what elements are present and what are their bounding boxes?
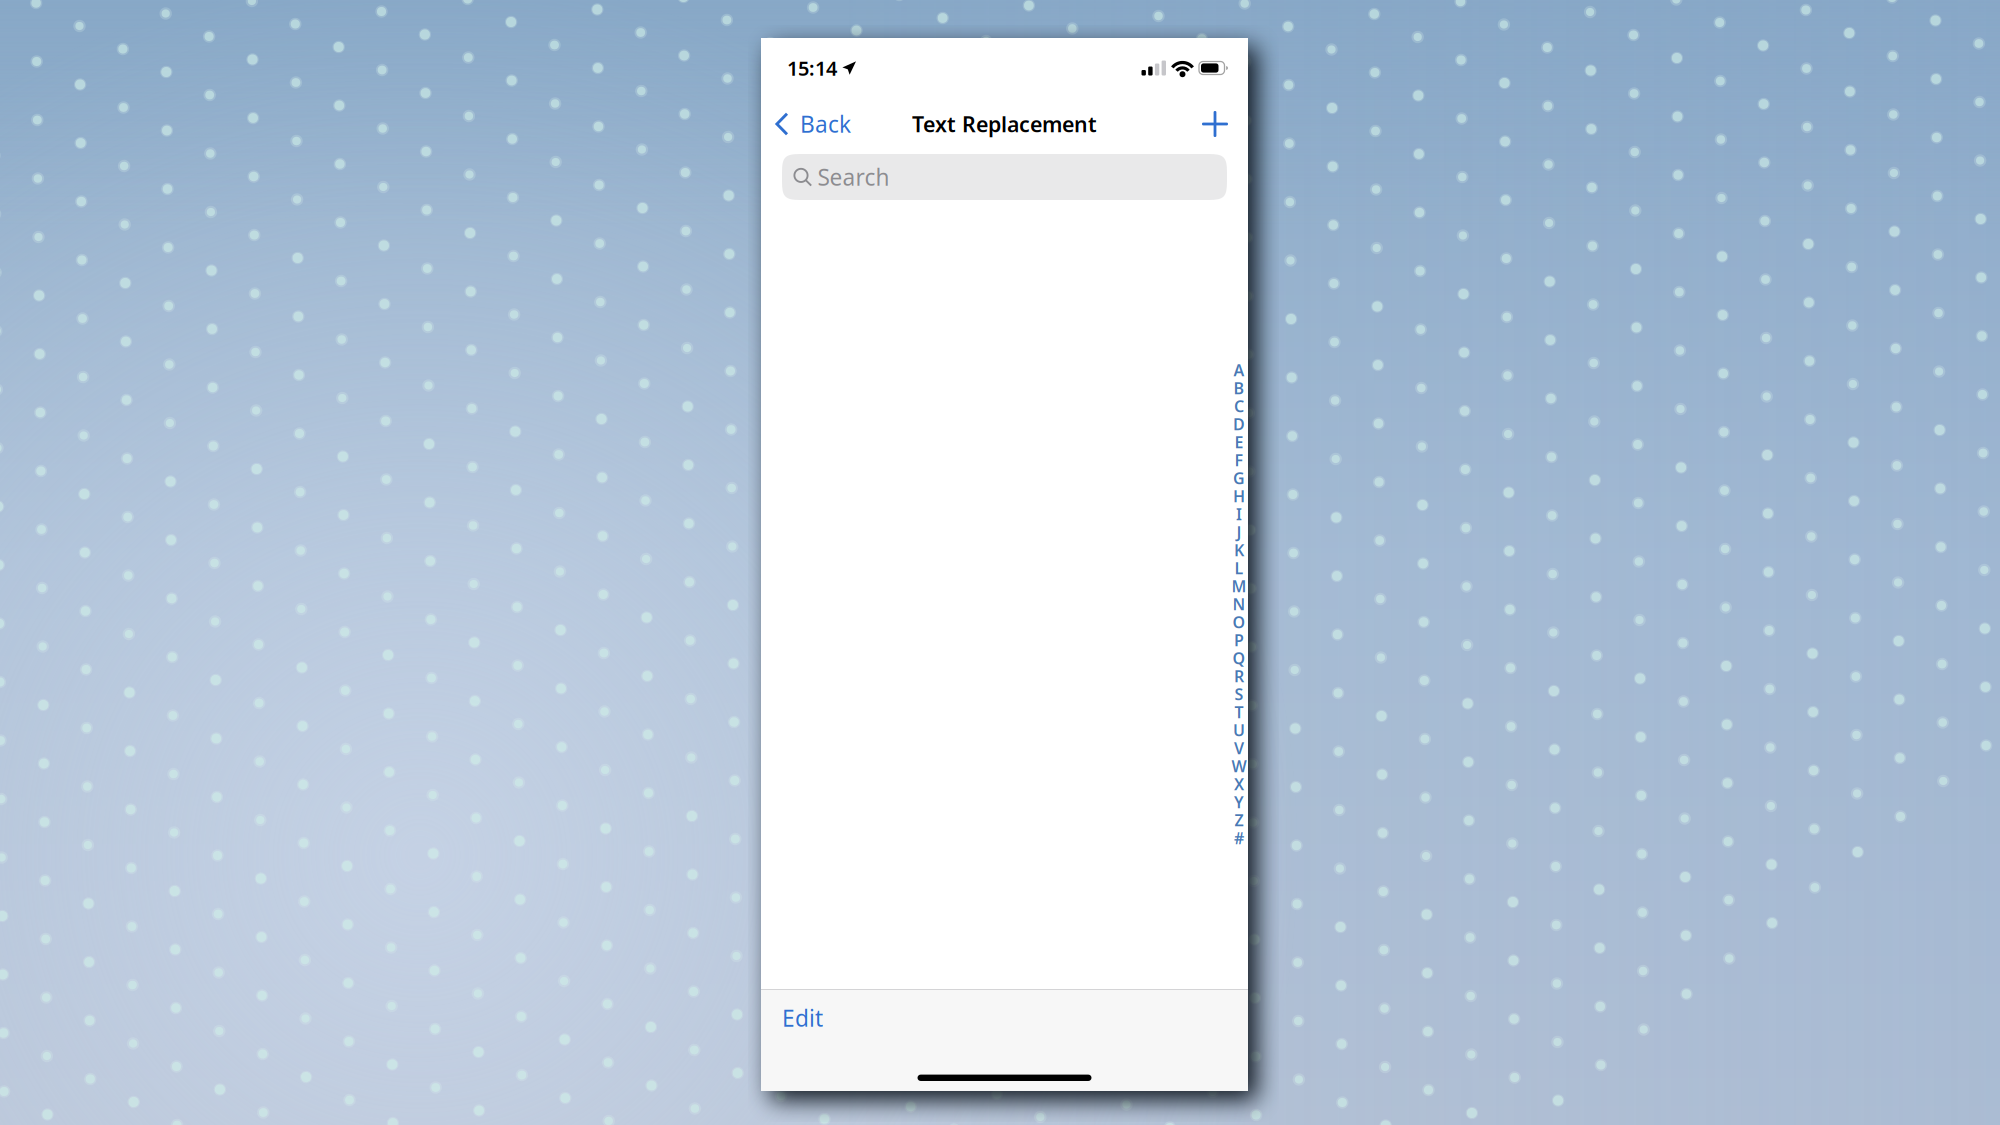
button[interactable]: Section index [1230, 361, 1248, 847]
staticText: Text Replacement [912, 110, 1097, 138]
staticText: 15:14 [787, 55, 837, 81]
staticText: Search [817, 162, 889, 192]
staticText: E [1234, 431, 1243, 453]
button[interactable]: Search [782, 154, 1227, 200]
staticText: G [1233, 467, 1245, 489]
staticText: Back [800, 109, 851, 139]
staticText: W [1231, 755, 1246, 777]
staticText: T [1234, 701, 1243, 723]
staticText: M [1231, 575, 1246, 597]
staticText: Y [1234, 791, 1244, 813]
button[interactable]: Edit [761, 990, 841, 1046]
staticText: B [1233, 377, 1244, 399]
staticText: O [1232, 611, 1245, 633]
staticText: K [1234, 539, 1244, 561]
staticText: D [1233, 413, 1245, 435]
staticText: A [1233, 359, 1244, 381]
staticText: R [1234, 665, 1244, 687]
staticText: Edit [782, 1003, 823, 1033]
staticText: Q [1232, 647, 1245, 669]
staticText: N [1232, 593, 1245, 615]
staticText: Z [1234, 809, 1243, 831]
staticText: H [1233, 485, 1245, 507]
staticText: X [1234, 773, 1244, 795]
staticText: S [1234, 683, 1243, 705]
staticText: L [1234, 557, 1243, 579]
button[interactable]: Add text replacement [1188, 98, 1248, 150]
staticText: F [1234, 449, 1243, 471]
staticText: I [1236, 503, 1242, 525]
button[interactable]: Back [761, 98, 861, 150]
staticText: V [1234, 737, 1244, 759]
staticText: C [1234, 395, 1244, 417]
staticText: P [1234, 629, 1244, 651]
staticText: U [1233, 719, 1245, 741]
staticText: # [1234, 827, 1244, 849]
staticText: J [1236, 521, 1241, 543]
